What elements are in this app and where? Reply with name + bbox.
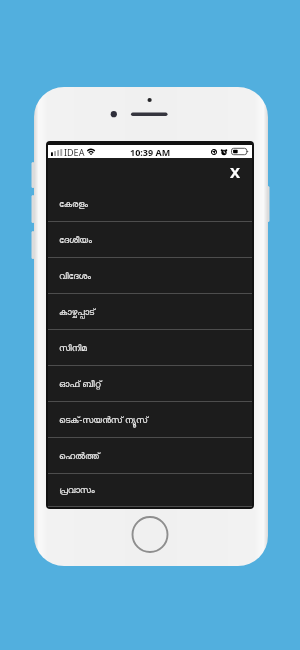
staticText: IDEA	[64, 146, 85, 158]
button[interactable]: പ്രവാസം	[48, 474, 252, 507]
staticText: കാഴ്ചപ്പാട്	[59, 308, 95, 317]
button[interactable]: കേരളം	[48, 186, 252, 222]
staticText: X	[230, 162, 241, 182]
button[interactable]: സിനിമ	[48, 330, 252, 366]
button[interactable]: Close	[225, 162, 245, 182]
button[interactable]: ഹെൽത്ത്	[48, 438, 252, 474]
staticText: ടെക്-സയൻസ് ന്യൂസ്	[59, 414, 148, 426]
staticText: ഹെൽത്ത്	[59, 452, 100, 461]
button[interactable]: ഓഫ് ബീറ്റ്	[48, 366, 252, 402]
button[interactable]: വിദേശം	[48, 258, 252, 294]
button[interactable]: ടെക്-സയൻസ് ന്യൂസ്	[48, 402, 252, 438]
staticText: വിദേശം	[59, 272, 91, 281]
button[interactable]: ദേശീയം	[48, 222, 252, 258]
staticText: ഓഫ് ബീറ്റ്	[59, 378, 102, 390]
staticText: ദേശീയം	[59, 236, 92, 245]
staticText: സിനിമ	[59, 344, 87, 353]
staticText: പ്രവാസം	[59, 486, 95, 495]
staticText: കേരളം	[59, 200, 88, 209]
staticText: 10:39 AM	[130, 146, 171, 158]
button[interactable]: കാഴ്ചപ്പാട്	[48, 294, 252, 330]
